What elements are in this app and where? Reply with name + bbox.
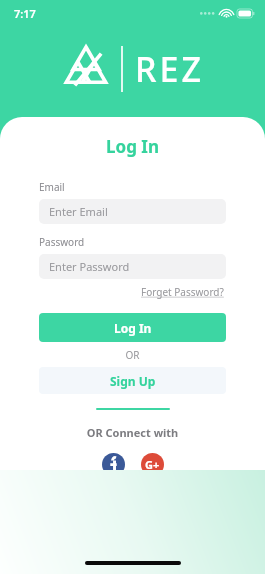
staticText: REZ: [135, 46, 204, 92]
staticText: 7:17: [14, 6, 36, 21]
button[interactable]: Sign in with Google Plus: [141, 453, 164, 476]
staticText: Log In: [0, 135, 265, 158]
staticText: Password: [39, 235, 85, 249]
button[interactable]: Forget Password?: [139, 283, 226, 301]
staticText: Log In: [114, 320, 152, 336]
button[interactable]: Enter Password: [39, 254, 226, 279]
staticText: Enter Password: [49, 259, 130, 274]
button[interactable]: Enter Email: [39, 199, 226, 224]
button[interactable]: Sign Up: [39, 367, 226, 394]
staticText: Forget Password?: [141, 285, 224, 299]
staticText: Enter Email: [49, 204, 108, 219]
button[interactable]: Sign in with Facebook: [102, 453, 125, 476]
staticText: Email: [39, 180, 65, 194]
staticText: Sign Up: [110, 373, 156, 389]
button[interactable]: Log In: [39, 313, 226, 342]
staticText: OR: [39, 348, 226, 362]
staticText: G+: [145, 457, 160, 472]
staticText: OR Connect with: [0, 425, 265, 440]
